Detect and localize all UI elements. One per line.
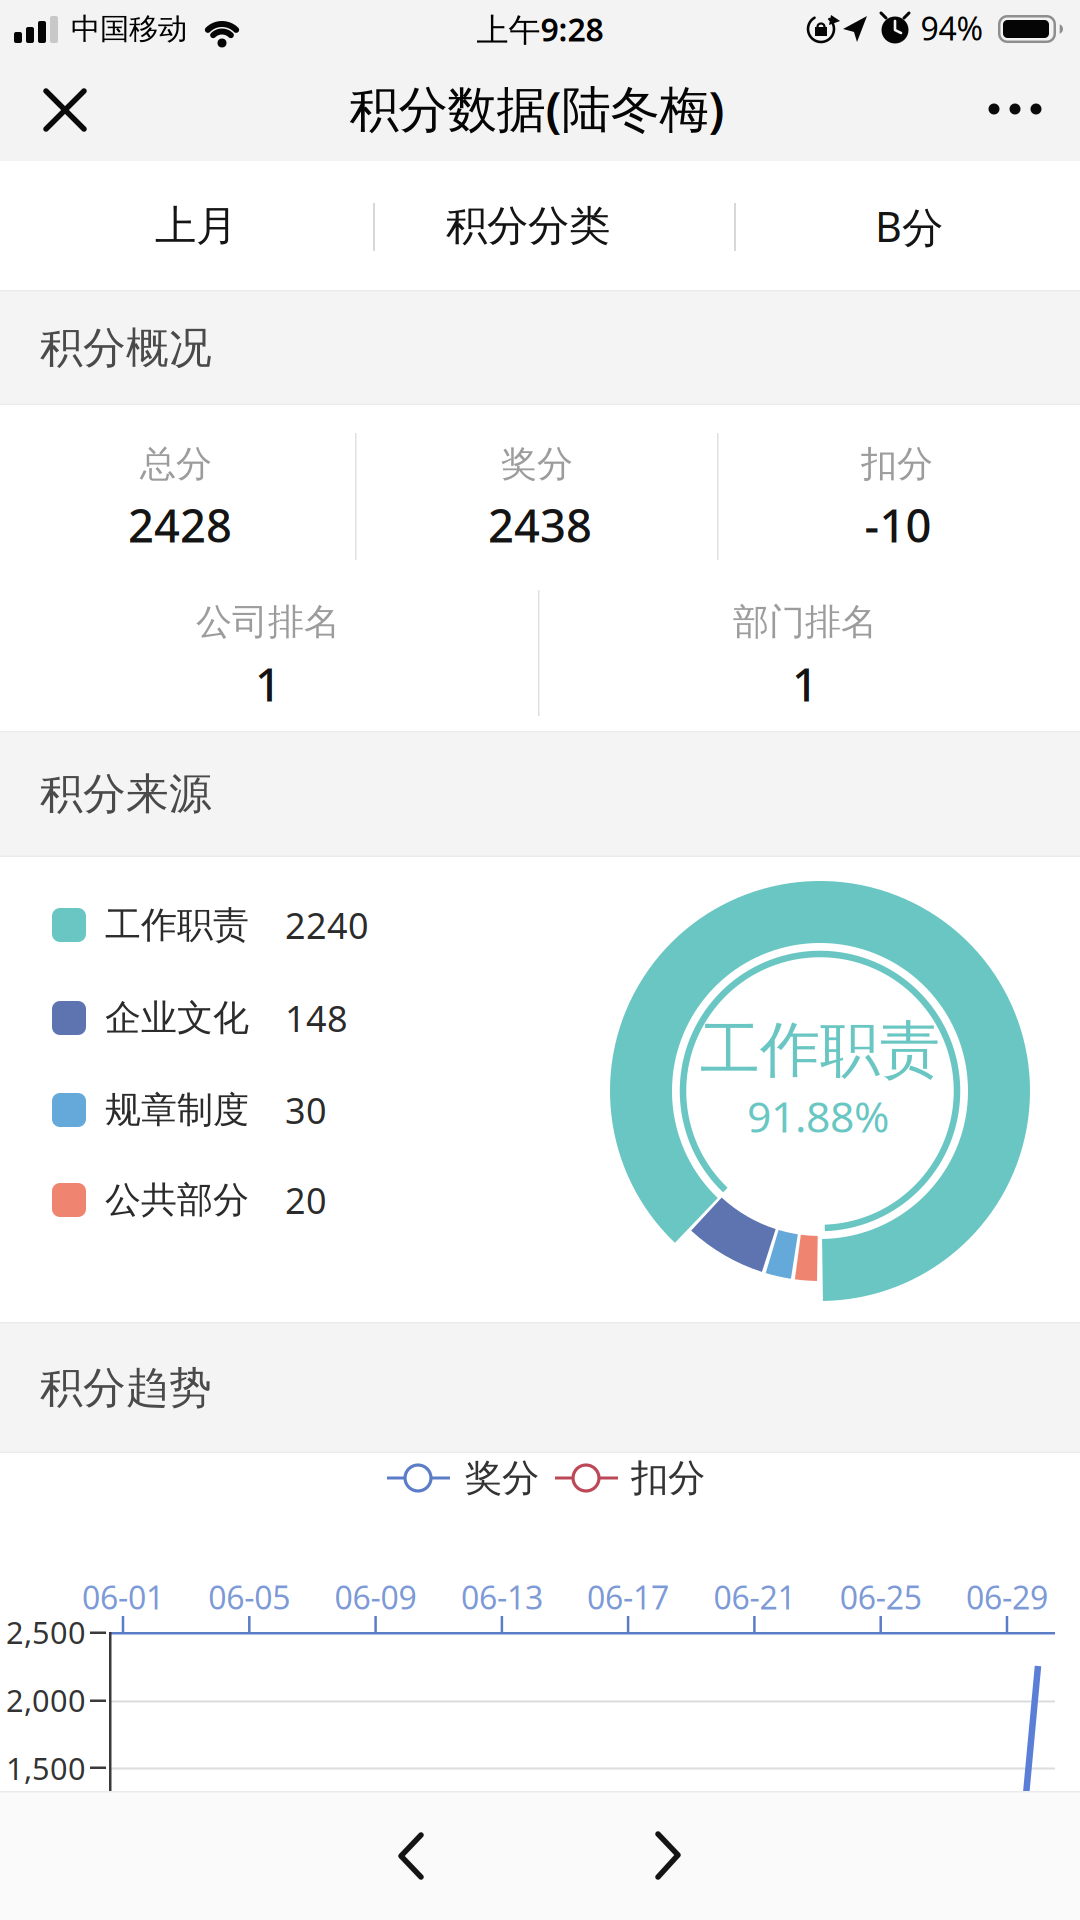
staticText: 扣分 — [861, 442, 933, 486]
staticText: 扣分 — [631, 1455, 705, 1501]
staticText: 91.88% — [747, 1088, 889, 1144]
staticText: 工作职责 — [105, 903, 249, 947]
staticText: 上月 — [155, 201, 237, 251]
button[interactable]: 积分分类 — [349, 162, 706, 290]
staticText: 规章制度 — [105, 1088, 249, 1132]
staticText: B分 — [875, 198, 943, 253]
staticText: 06-21 — [713, 1576, 795, 1618]
button[interactable]: More — [980, 79, 1050, 139]
button[interactable]: Next — [626, 1810, 716, 1900]
staticText: 06-25 — [840, 1576, 922, 1618]
staticText: 2,000 — [6, 1680, 86, 1720]
staticText: -10 — [864, 495, 931, 555]
staticText: 1 — [255, 654, 281, 714]
staticText: 积分趋势 — [40, 1362, 212, 1414]
staticText: 20 — [285, 1176, 327, 1224]
staticText: 94% — [920, 7, 983, 49]
staticText: 06-17 — [587, 1576, 669, 1618]
staticText: 积分数据(陆冬梅) — [349, 75, 724, 141]
staticText: 奖分 — [501, 442, 573, 486]
staticText: 部门排名 — [733, 600, 877, 644]
staticText: 2438 — [488, 495, 592, 555]
staticText: 积分来源 — [40, 768, 212, 820]
button[interactable]: B分 — [737, 162, 1080, 290]
staticText: 06-09 — [335, 1576, 417, 1618]
staticText: 企业文化 — [105, 996, 249, 1040]
staticText: 30 — [285, 1086, 327, 1134]
button[interactable]: Close — [26, 72, 104, 148]
staticText: 总分 — [140, 442, 212, 486]
staticText: 上午9:28 — [476, 8, 603, 50]
staticText: 2,500 — [6, 1612, 86, 1652]
staticText: 奖分 — [465, 1455, 539, 1501]
staticText: 公司排名 — [196, 600, 340, 644]
staticText: 公共部分 — [105, 1178, 249, 1222]
staticText: 工作职责 — [700, 1013, 940, 1087]
staticText: 06-13 — [461, 1576, 543, 1618]
staticText: 积分分类 — [446, 201, 610, 251]
staticText: 中国移动 — [71, 11, 187, 47]
staticText: 1 — [792, 654, 818, 714]
staticText: 06-29 — [966, 1576, 1048, 1618]
staticText: 148 — [285, 994, 348, 1042]
staticText: 2240 — [285, 901, 369, 949]
button[interactable]: Previous — [365, 1811, 455, 1901]
staticText: 06-05 — [208, 1576, 290, 1618]
staticText: 2428 — [128, 495, 232, 555]
staticText: 1,500 — [6, 1748, 86, 1788]
staticText: 06-01 — [82, 1576, 164, 1618]
button[interactable]: 上月 — [12, 162, 380, 290]
staticText: 积分概况 — [40, 322, 212, 374]
